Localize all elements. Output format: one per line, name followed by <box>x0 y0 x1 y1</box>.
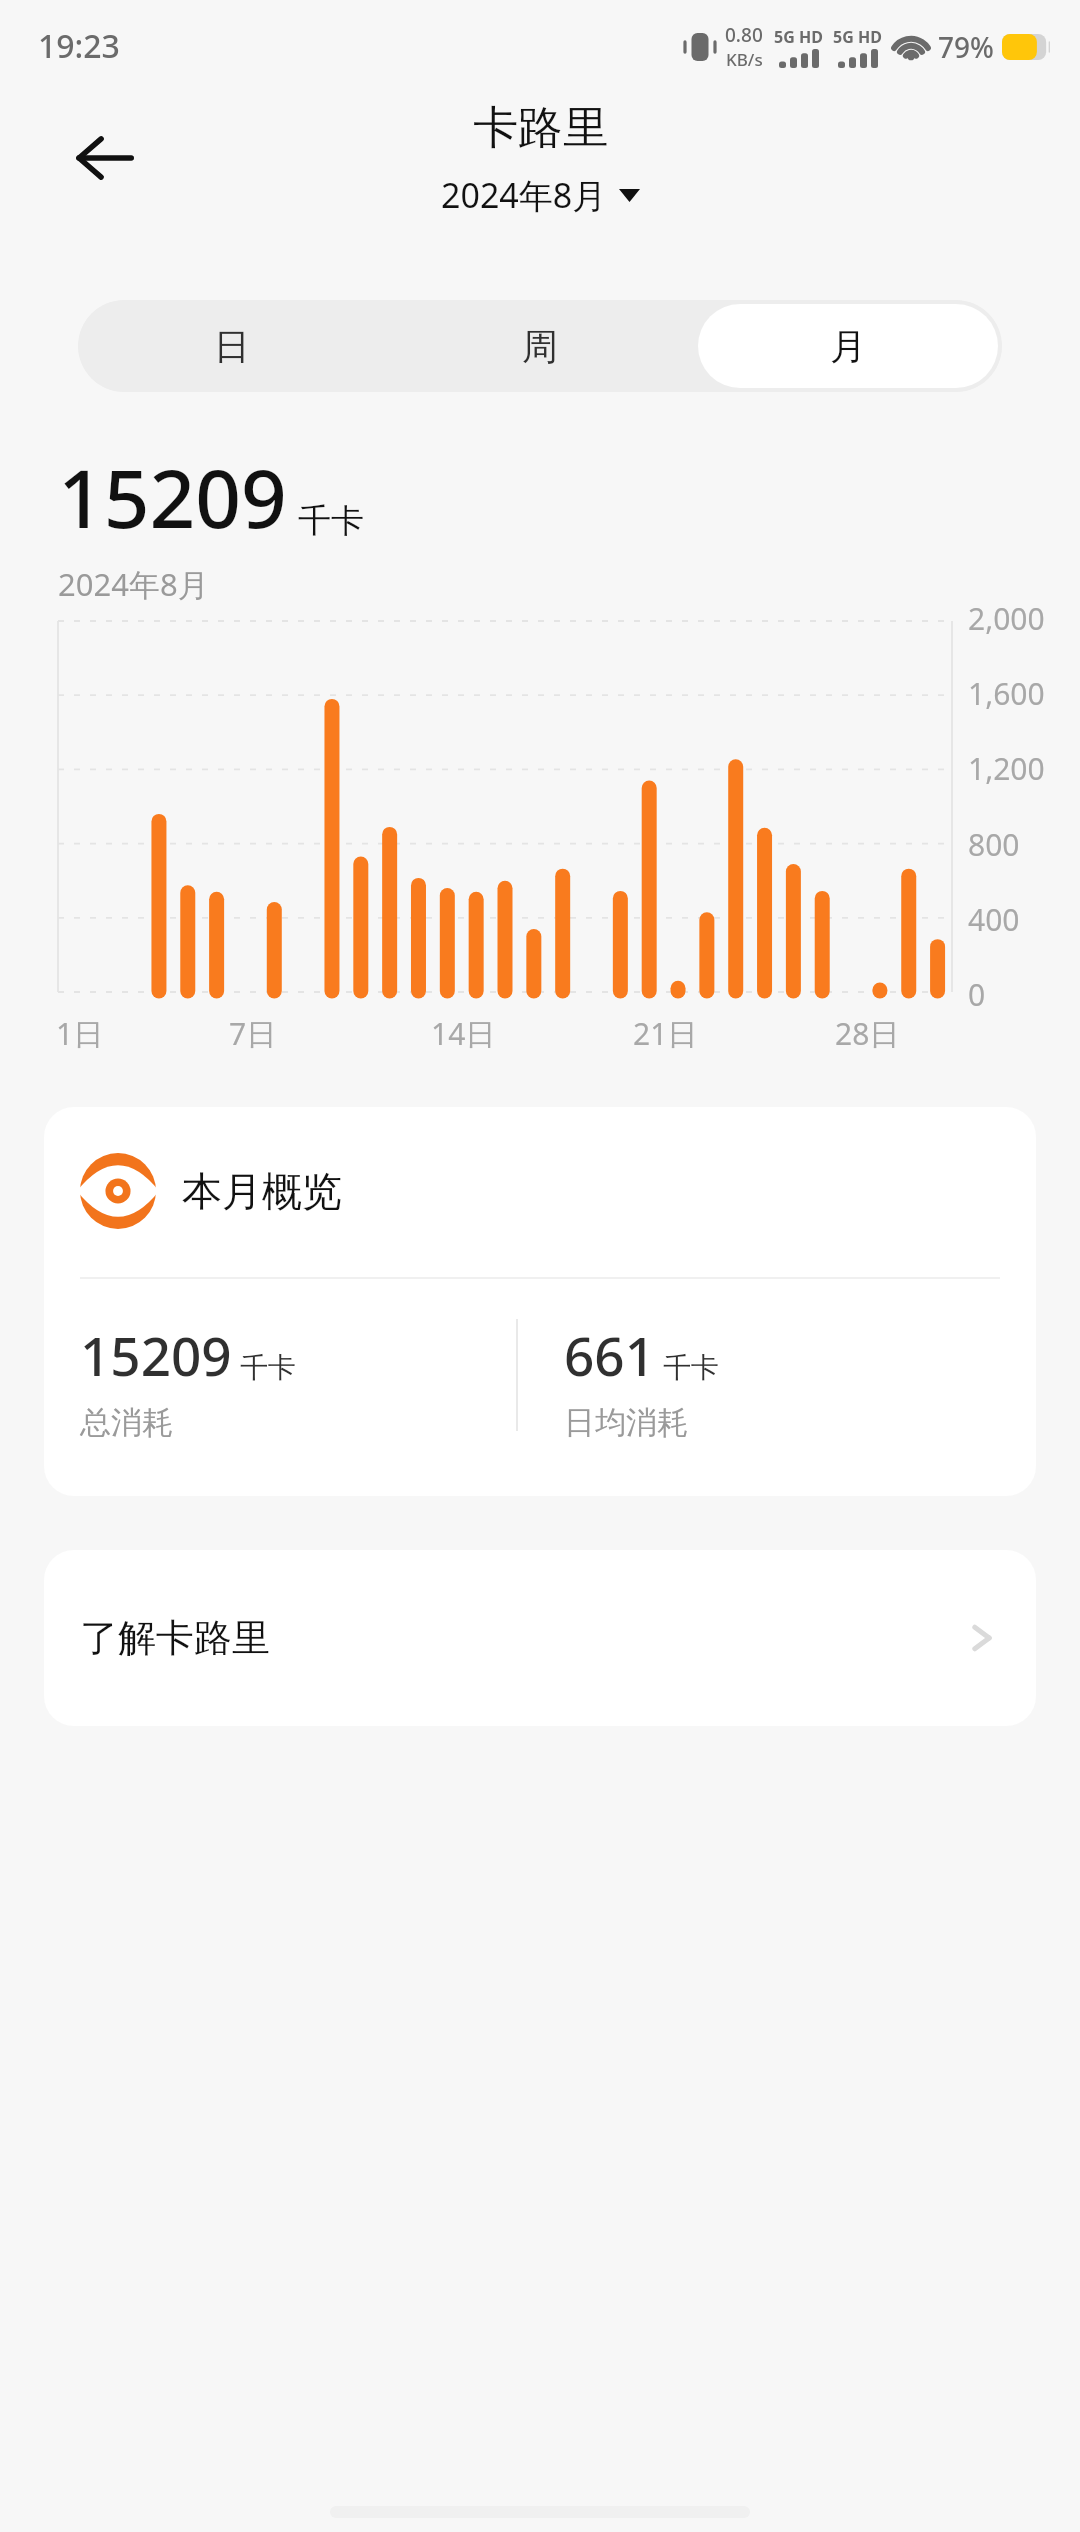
staticText: 661 <box>564 1319 655 1391</box>
staticText: 19:23 <box>38 24 120 68</box>
staticText: 卡路里 <box>473 100 608 157</box>
staticText: 0.80 <box>725 22 763 48</box>
staticText: 总消耗 <box>80 1403 173 1442</box>
staticText: 5G HD <box>774 26 823 48</box>
staticText: 2024年8月 <box>58 563 209 605</box>
button[interactable]: 月 <box>698 304 998 388</box>
staticText: 28日 <box>835 1013 900 1054</box>
staticText: 2024年8月 <box>441 172 607 218</box>
staticText: 日均消耗 <box>564 1403 688 1442</box>
staticText: 本月概览 <box>182 1166 342 1216</box>
staticText: 79% <box>938 28 994 66</box>
staticText: 月 <box>830 324 866 369</box>
staticText: 千卡 <box>298 500 364 542</box>
staticText: 2,000 <box>968 598 1045 639</box>
staticText: 400 <box>968 899 1020 940</box>
staticText: 千卡 <box>240 1350 296 1385</box>
staticText: 15209 <box>58 442 287 551</box>
staticText: 15209 <box>80 1319 232 1391</box>
staticText: 800 <box>968 824 1020 865</box>
staticText: KB/s <box>726 48 763 71</box>
staticText: 21日 <box>633 1013 698 1054</box>
button[interactable]: Back <box>52 106 156 210</box>
staticText: 1日 <box>56 1013 104 1054</box>
staticText: 14日 <box>431 1013 496 1054</box>
staticText: 0 <box>968 974 986 1015</box>
staticText: 5G HD <box>833 26 882 48</box>
staticText: 千卡 <box>663 1350 719 1385</box>
button[interactable]: 本月概览 <box>44 1107 1036 1496</box>
staticText: 周 <box>522 324 558 369</box>
button[interactable]: 了解卡路里 <box>44 1550 1036 1726</box>
button[interactable]: 日 <box>82 304 382 388</box>
staticText: 日 <box>214 324 250 369</box>
staticText: 7日 <box>229 1013 277 1054</box>
staticText: 1,600 <box>968 673 1045 714</box>
button[interactable]: 2024年8月 <box>433 169 648 221</box>
button[interactable]: 周 <box>390 304 690 388</box>
staticText: 了解卡路里 <box>80 1614 270 1662</box>
staticText: 1,200 <box>968 748 1045 789</box>
